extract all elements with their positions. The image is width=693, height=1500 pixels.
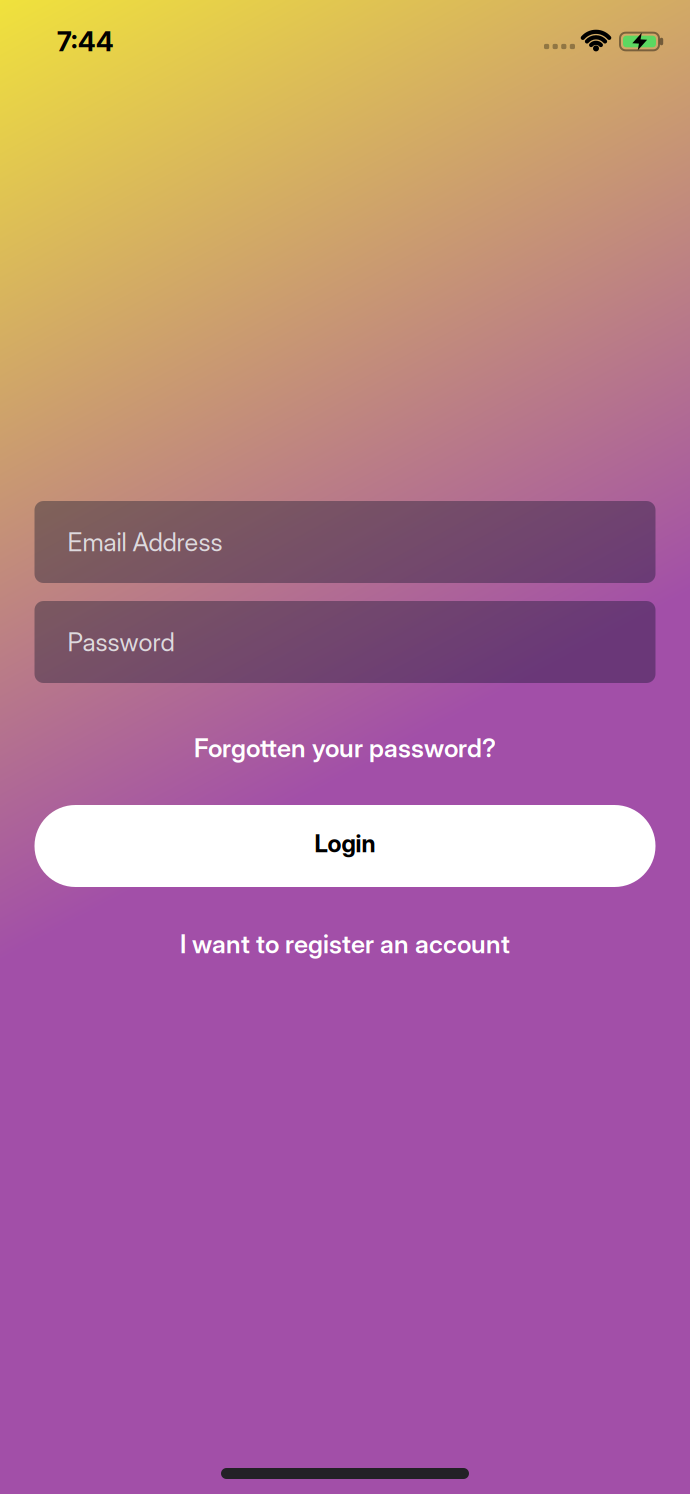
textField[interactable]: Password xyxy=(34,601,655,683)
staticText: Password xyxy=(67,627,174,657)
staticText: I want to register an account xyxy=(180,929,510,959)
staticText: 7:44 xyxy=(57,26,114,57)
staticText: Forgotten your password? xyxy=(194,733,496,763)
staticText: Login xyxy=(314,829,375,858)
button[interactable]: I want to register an account xyxy=(180,929,510,959)
button[interactable]: Login xyxy=(34,805,655,887)
staticText: Email Address xyxy=(67,527,222,557)
button[interactable]: Forgotten your password? xyxy=(194,733,496,763)
textField[interactable]: Email Address xyxy=(34,501,655,583)
